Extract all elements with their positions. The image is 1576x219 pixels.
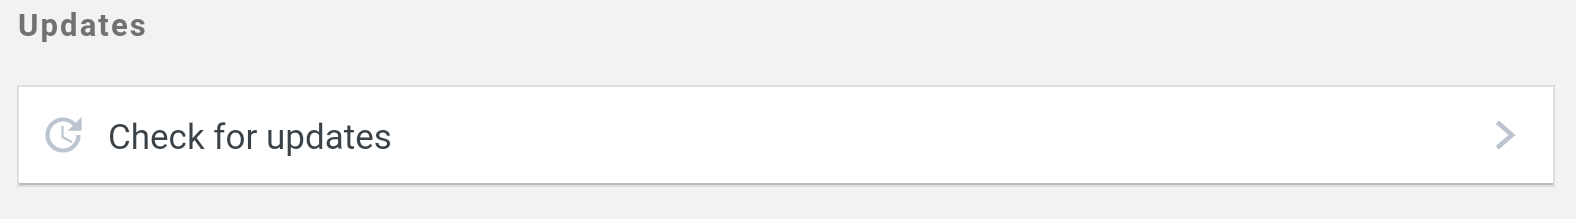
other: Open	[1485, 115, 1525, 155]
staticText: Check for updates	[108, 117, 392, 158]
button[interactable]: Check for updates	[19, 87, 1553, 185]
other: Check for updates	[43, 115, 83, 155]
staticText: Updates	[18, 7, 148, 43]
